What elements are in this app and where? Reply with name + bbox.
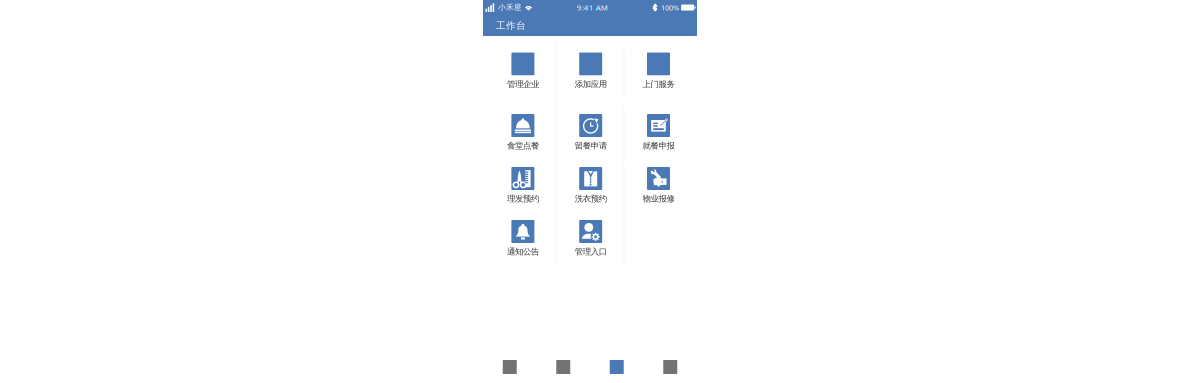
button[interactable]: 工作台	[590, 355, 643, 383]
staticText: 物业报修	[642, 193, 674, 204]
button[interactable]: 物业报修	[625, 158, 692, 211]
staticText: 小禾星	[498, 3, 522, 12]
button[interactable]: 洗衣预约	[557, 158, 625, 211]
staticText: 留餐申请	[575, 140, 607, 151]
staticText: 添加应用	[575, 79, 607, 89]
staticText: 9:41 AM	[577, 2, 608, 13]
button[interactable]: 管理入口	[557, 211, 625, 264]
staticText: 理发预约	[507, 193, 539, 204]
button[interactable]: 食堂点餐	[489, 105, 557, 158]
button[interactable]: 我的	[643, 355, 697, 383]
button[interactable]: 添加应用	[557, 44, 625, 99]
button[interactable]: 理发预约	[489, 158, 557, 211]
staticText: 管理入口	[575, 246, 607, 257]
button[interactable]: 首页	[483, 355, 536, 383]
button[interactable]: 通讯录	[536, 355, 590, 383]
staticText: 工作台	[496, 19, 526, 32]
staticText: 管理企业	[507, 79, 539, 89]
staticText: 洗衣预约	[575, 193, 607, 204]
button[interactable]: 通知公告	[489, 211, 557, 264]
button[interactable]: 上门服务	[625, 44, 692, 99]
staticText: 上门服务	[642, 79, 674, 89]
staticText: 通知公告	[507, 246, 539, 257]
staticText: 就餐申报	[642, 140, 674, 151]
button[interactable]: 就餐申报	[625, 105, 692, 158]
button[interactable]: 留餐申请	[557, 105, 625, 158]
staticText: 100%	[661, 2, 679, 13]
button[interactable]: 管理企业	[489, 44, 557, 99]
staticText: 食堂点餐	[507, 140, 539, 151]
